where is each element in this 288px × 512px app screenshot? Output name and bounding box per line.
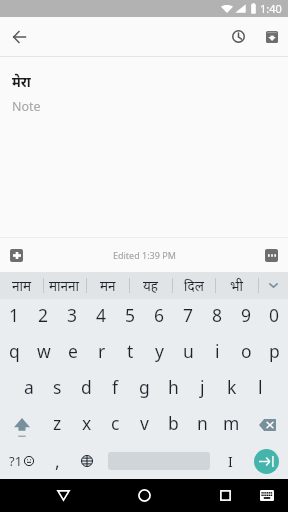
staticText: x <box>82 411 92 435</box>
staticText: I <box>228 452 233 471</box>
staticText: m <box>223 411 240 435</box>
button[interactable]: s <box>43 371 72 407</box>
button[interactable]: k <box>217 371 246 407</box>
button[interactable]: u <box>174 335 203 371</box>
button[interactable]: , <box>43 443 72 479</box>
staticText: Note <box>12 98 41 115</box>
button[interactable]: Shift <box>0 407 43 443</box>
staticText: a <box>24 375 34 399</box>
button[interactable]: Back <box>4 22 34 52</box>
staticText: r <box>98 339 106 363</box>
button[interactable]: 9 <box>232 299 261 335</box>
button[interactable]: z <box>43 407 72 443</box>
button[interactable]: यह <box>129 272 172 299</box>
button[interactable]: q <box>0 335 29 371</box>
staticText: l <box>258 375 263 399</box>
button[interactable]: ?1 <box>0 443 43 479</box>
staticText: मानना <box>49 277 80 295</box>
button[interactable]: मन <box>86 272 129 299</box>
button[interactable]: Home <box>122 479 166 512</box>
staticText: ?1 <box>9 452 23 470</box>
staticText: 5 <box>125 303 136 327</box>
staticText: दिल <box>184 277 204 295</box>
button[interactable]: n <box>188 407 217 443</box>
staticText: e <box>68 339 78 363</box>
staticText: z <box>53 411 62 435</box>
staticText: मन <box>100 277 116 295</box>
button[interactable]: 8 <box>203 299 232 335</box>
button[interactable]: Archive <box>254 21 286 53</box>
button[interactable]: m <box>217 407 246 443</box>
staticText: नाम <box>12 277 32 295</box>
button[interactable]: t <box>116 335 145 371</box>
staticText: n <box>197 411 208 435</box>
staticText: v <box>140 411 149 435</box>
button[interactable]: 6 <box>145 299 174 335</box>
button[interactable]: b <box>159 407 188 443</box>
button[interactable]: More suggestions <box>258 272 288 299</box>
button[interactable]: w <box>29 335 58 371</box>
staticText: 4 <box>96 303 107 327</box>
button[interactable]: 2 <box>29 299 58 335</box>
staticText: h <box>168 375 179 399</box>
staticText: w <box>37 339 51 363</box>
staticText: 0 <box>269 303 280 327</box>
staticText: d <box>81 375 92 399</box>
button[interactable]: मानना <box>43 272 86 299</box>
button[interactable]: e <box>58 335 87 371</box>
button[interactable]: Change language <box>72 443 101 479</box>
button[interactable]: Backspace <box>246 407 288 443</box>
staticText: f <box>112 375 119 399</box>
staticText: 8 <box>212 303 223 327</box>
button[interactable]: f <box>101 371 130 407</box>
staticText: p <box>269 339 280 363</box>
button[interactable]: c <box>101 407 130 443</box>
button[interactable]: h <box>159 371 188 407</box>
button[interactable]: l <box>246 371 275 407</box>
staticText: भी <box>230 277 243 295</box>
button[interactable]: 7 <box>174 299 203 335</box>
button[interactable]: भी <box>215 272 258 299</box>
button[interactable]: I <box>216 443 245 479</box>
button[interactable]: Enter <box>245 443 288 479</box>
button[interactable]: j <box>188 371 217 407</box>
button[interactable]: x <box>72 407 101 443</box>
button[interactable]: 5 <box>116 299 145 335</box>
button[interactable]: d <box>72 371 101 407</box>
button[interactable]: Reminder <box>222 21 254 53</box>
staticText: , <box>55 449 60 473</box>
staticText: 6 <box>154 303 165 327</box>
button[interactable]: More options <box>259 243 284 268</box>
staticText: 3 <box>67 303 78 327</box>
button[interactable]: v <box>130 407 159 443</box>
staticText: Edited 1:39 PM <box>113 249 176 261</box>
staticText: 1 <box>9 303 20 327</box>
staticText: मेरा <box>12 73 31 91</box>
button[interactable]: i <box>203 335 232 371</box>
button[interactable]: Back <box>41 479 85 512</box>
button[interactable]: 0 <box>261 299 288 335</box>
button[interactable]: o <box>232 335 261 371</box>
button[interactable]: Change keyboard <box>250 479 284 512</box>
staticText: o <box>241 339 252 363</box>
button[interactable]: नाम <box>0 272 43 299</box>
staticText: 1:40 <box>260 1 282 16</box>
staticText: t <box>127 339 134 363</box>
button[interactable]: Space <box>101 443 216 479</box>
staticText: c <box>111 411 120 435</box>
button[interactable]: 3 <box>58 299 87 335</box>
button[interactable]: दिल <box>172 272 215 299</box>
staticText: 2 <box>38 303 49 327</box>
button[interactable]: 4 <box>87 299 116 335</box>
button[interactable]: p <box>261 335 288 371</box>
button[interactable]: 1 <box>0 299 29 335</box>
button[interactable]: r <box>87 335 116 371</box>
button[interactable]: Add <box>4 243 29 268</box>
staticText: q <box>9 339 20 363</box>
button[interactable]: Recents <box>203 479 247 512</box>
staticText: g <box>139 375 150 399</box>
button[interactable]: g <box>130 371 159 407</box>
button[interactable]: a <box>14 371 43 407</box>
staticText: j <box>200 375 205 399</box>
button[interactable]: y <box>145 335 174 371</box>
